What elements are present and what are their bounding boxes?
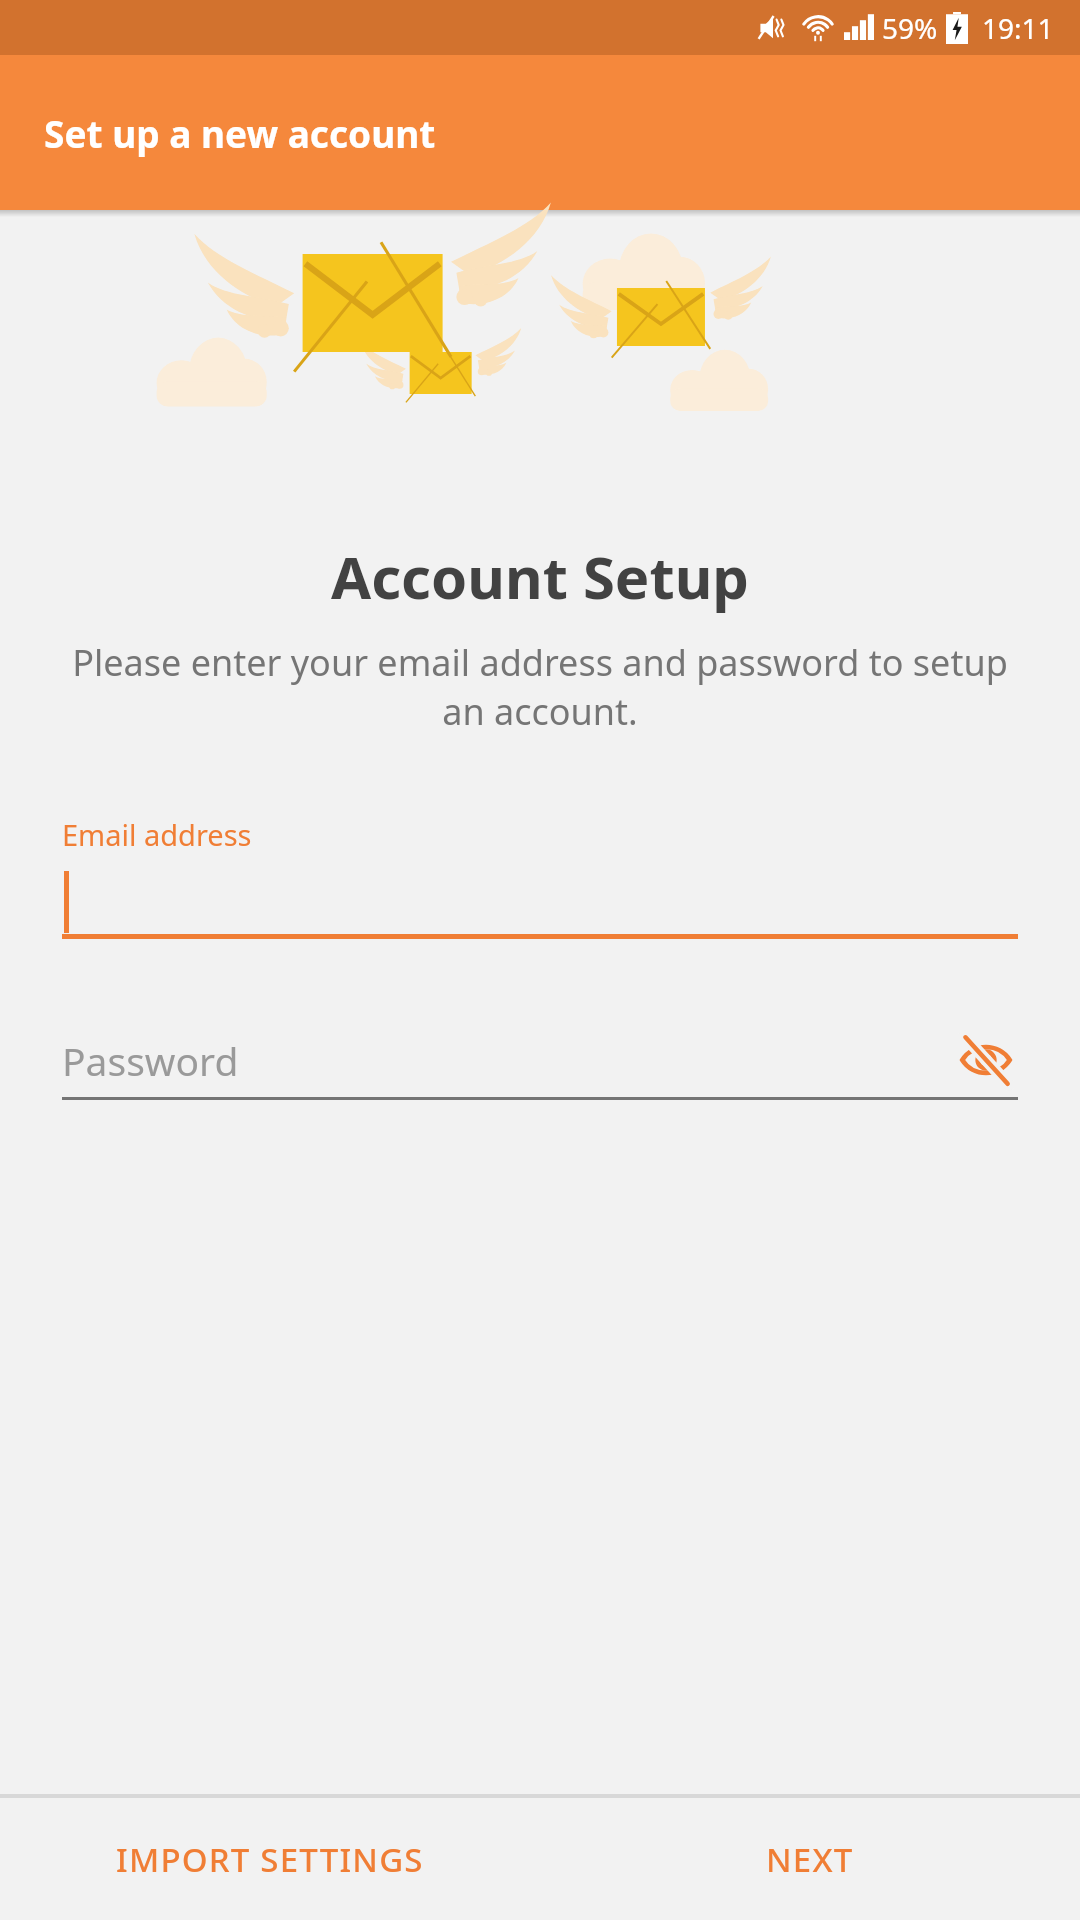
staticText: Please enter your email address and pass… xyxy=(70,638,1010,735)
staticText: NEXT xyxy=(766,1837,854,1882)
staticText: Email address xyxy=(62,815,252,854)
staticText: Set up a new account xyxy=(44,108,436,158)
button[interactable]: Password xyxy=(62,1023,1018,1097)
staticText: Account Setup xyxy=(0,537,1080,616)
button[interactable]: NEXT xyxy=(540,1798,1080,1920)
button[interactable]: Email address xyxy=(62,815,1018,939)
button[interactable]: IMPORT SETTINGS xyxy=(0,1798,540,1920)
staticText: Password xyxy=(62,1034,954,1087)
button[interactable]: Show password xyxy=(954,1028,1018,1092)
staticText: IMPORT SETTINGS xyxy=(116,1837,424,1882)
staticText: 59% xyxy=(882,9,938,47)
staticText: 19:11 xyxy=(982,9,1054,47)
